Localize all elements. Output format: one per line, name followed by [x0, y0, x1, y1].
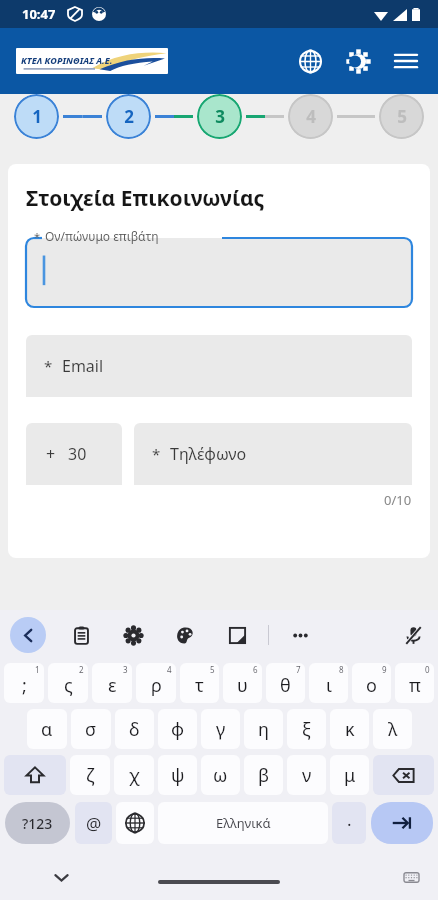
staticText: κ: [345, 717, 355, 742]
button[interactable]: κ: [330, 709, 369, 749]
button[interactable]: Menu: [382, 37, 430, 85]
button[interactable]: 2: [106, 94, 151, 139]
staticText: ο: [366, 673, 377, 698]
button[interactable]: γ: [201, 709, 240, 749]
button[interactable]: ψ: [158, 755, 197, 795]
staticText: 1: [35, 664, 40, 675]
staticText: χ: [129, 763, 140, 788]
staticText: ξ: [302, 717, 311, 742]
button[interactable]: 5: [379, 94, 424, 139]
staticText: ι: [326, 673, 332, 698]
button[interactable]: ?123: [5, 802, 70, 844]
button[interactable]: ς: [48, 663, 88, 703]
button[interactable]: Shift: [4, 755, 66, 795]
staticText: ν: [302, 763, 312, 788]
staticText: 1: [32, 105, 42, 128]
button[interactable]: υ: [223, 663, 262, 703]
staticText: 2: [79, 664, 84, 675]
staticText: 30: [68, 443, 87, 465]
button[interactable]: Ελληνικά: [158, 802, 328, 844]
button[interactable]: π: [395, 663, 434, 703]
staticText: μ: [344, 763, 356, 788]
staticText: 2: [124, 105, 134, 128]
button[interactable]: σ: [71, 709, 111, 749]
staticText: ψ: [171, 763, 185, 788]
button[interactable]: λ: [373, 709, 412, 749]
button[interactable]: θ: [266, 663, 305, 703]
button[interactable]: ν: [287, 755, 326, 795]
button[interactable]: Language: [286, 37, 334, 85]
staticText: *: [34, 229, 41, 244]
staticText: Ον/πώνυμο επιβάτη: [45, 228, 159, 244]
button[interactable]: 3: [197, 94, 242, 139]
button[interactable]: β: [244, 755, 283, 795]
button[interactable]: Hide keyboard: [46, 862, 76, 892]
button[interactable]: 1: [14, 94, 59, 139]
button[interactable]: *: [26, 229, 412, 307]
button[interactable]: Settings: [118, 620, 148, 650]
staticText: υ: [237, 673, 248, 698]
button[interactable]: 4: [288, 94, 333, 139]
staticText: ς: [64, 673, 73, 698]
button[interactable]: Microphone off: [398, 620, 428, 650]
staticText: τ: [195, 673, 204, 698]
button[interactable]: Back: [10, 617, 46, 653]
staticText: Τηλέφωνο: [170, 443, 247, 465]
button[interactable]: ζ: [70, 755, 110, 795]
button[interactable]: φ: [158, 709, 197, 749]
staticText: ΚΤΕΛ ΚΟΡΙΝΘΙΑΣ Α.Ε.: [21, 54, 113, 66]
staticText: ?123: [22, 814, 53, 833]
button[interactable]: δ: [115, 709, 154, 749]
staticText: γ: [216, 717, 226, 742]
button[interactable]: ω: [201, 755, 240, 795]
staticText: *: [152, 444, 161, 464]
button[interactable]: τ: [180, 663, 219, 703]
staticText: λ: [388, 717, 398, 742]
button[interactable]: ι: [309, 663, 348, 703]
button[interactable]: μ: [330, 755, 369, 795]
staticText: θ: [280, 673, 291, 698]
staticText: 5: [397, 105, 407, 128]
button[interactable]: ΚΤΕΛ ΚΟΡΙΝΘΙΑΣ Α.Ε.: [16, 48, 168, 74]
button[interactable]: Resize: [222, 620, 252, 650]
staticText: 10:47: [22, 5, 56, 23]
staticText: Στοιχεία Επικοινωνίας: [26, 184, 265, 213]
staticText: ε: [108, 673, 117, 698]
button[interactable]: More options: [285, 620, 315, 650]
staticText: +: [46, 443, 56, 465]
button[interactable]: Change keyboard language: [116, 802, 154, 844]
staticText: η: [258, 717, 269, 742]
button[interactable]: χ: [114, 755, 154, 795]
button[interactable]: ο: [352, 663, 391, 703]
staticText: 3: [215, 105, 225, 128]
button[interactable]: ρ: [136, 663, 176, 703]
staticText: @: [86, 812, 102, 835]
button[interactable]: Theme: [170, 620, 200, 650]
staticText: α: [41, 717, 53, 742]
staticText: 0/10: [384, 491, 412, 509]
button[interactable]: +: [26, 423, 122, 485]
staticText: 4: [167, 664, 172, 675]
button[interactable]: Clipboard: [66, 620, 96, 650]
button[interactable]: η: [244, 709, 283, 749]
staticText: 7: [296, 664, 301, 675]
button[interactable]: *: [134, 423, 412, 485]
staticText: δ: [129, 717, 140, 742]
button[interactable]: ε: [92, 663, 132, 703]
button[interactable]: .: [332, 802, 366, 844]
button[interactable]: Backspace: [373, 755, 434, 795]
button[interactable]: ξ: [287, 709, 326, 749]
staticText: ω: [213, 763, 228, 788]
staticText: β: [258, 763, 270, 788]
button[interactable]: *: [26, 335, 412, 397]
staticText: ;: [22, 673, 27, 698]
staticText: π: [409, 673, 421, 698]
button[interactable]: α: [27, 709, 67, 749]
button[interactable]: @: [75, 802, 112, 844]
staticText: ρ: [151, 673, 162, 698]
button[interactable]: Switch input method: [398, 864, 424, 890]
button[interactable]: ;: [4, 663, 44, 703]
staticText: *: [44, 356, 53, 376]
button[interactable]: Toggle theme: [334, 37, 382, 85]
button[interactable]: Next: [371, 802, 433, 844]
